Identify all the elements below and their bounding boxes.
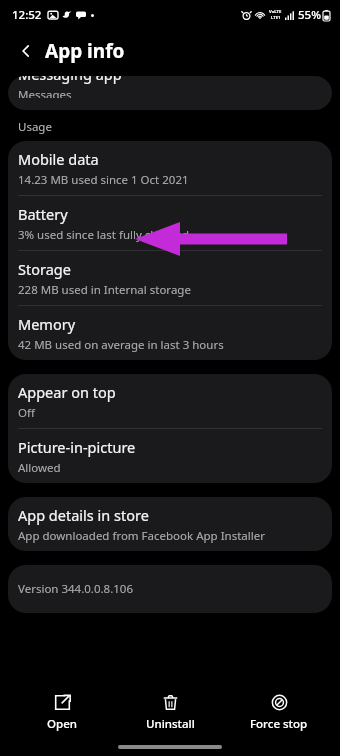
- button[interactable]: Mobile data: [8, 141, 332, 195]
- staticText: LTE1: [271, 15, 281, 21]
- staticText: 12:52: [12, 7, 42, 23]
- staticText: 55%: [298, 7, 321, 23]
- button[interactable]: Memory: [8, 306, 332, 360]
- staticText: Open: [47, 716, 77, 732]
- staticText: App downloaded from Facebook App Install…: [18, 528, 265, 544]
- staticText: Messaging app: [18, 76, 122, 84]
- button[interactable]: Back: [14, 39, 38, 63]
- staticText: Uninstall: [146, 716, 195, 732]
- staticText: Memory: [18, 314, 76, 334]
- staticText: 42 MB used on average in last 3 hours: [18, 337, 224, 353]
- button[interactable]: Messaging app: [8, 76, 332, 110]
- button[interactable]: Appear on top: [8, 374, 332, 428]
- staticText: Version 344.0.0.8.106: [18, 581, 133, 597]
- button[interactable]: Storage: [8, 251, 332, 305]
- staticText: Mobile data: [18, 149, 99, 169]
- staticText: App info: [45, 38, 125, 64]
- button[interactable]: Version 344.0.0.8.106: [8, 565, 332, 613]
- button[interactable]: Picture-in-picture: [8, 429, 332, 483]
- button[interactable]: Battery: [8, 196, 332, 250]
- staticText: Storage: [18, 259, 71, 279]
- staticText: 14.23 MB used since 1 Oct 2021: [18, 172, 189, 188]
- staticText: App details in store: [18, 505, 149, 525]
- button[interactable]: App details in store: [8, 497, 332, 551]
- staticText: 3% used since last fully charged: [18, 227, 190, 243]
- staticText: Usage: [18, 119, 52, 135]
- staticText: Off: [18, 405, 35, 421]
- staticText: Allowed: [18, 460, 61, 476]
- staticText: Picture-in-picture: [18, 437, 136, 457]
- button[interactable]: Uninstall: [123, 692, 217, 734]
- staticText: VoLTE: [269, 9, 282, 15]
- button[interactable]: Force stop: [232, 692, 326, 734]
- staticText: Battery: [18, 204, 68, 224]
- staticText: Messages: [18, 87, 72, 98]
- staticText: 228 MB used in Internal storage: [18, 282, 191, 298]
- staticText: Appear on top: [18, 382, 116, 402]
- button[interactable]: Open: [15, 692, 109, 734]
- staticText: Force stop: [250, 716, 308, 732]
